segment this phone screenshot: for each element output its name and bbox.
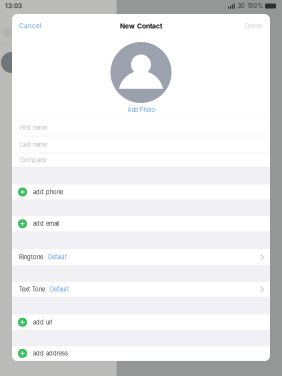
staticText: add phone	[33, 188, 63, 196]
staticText: Add Photo	[127, 106, 154, 113]
staticText: Done	[245, 22, 262, 30]
button[interactable]: Text Tone	[12, 282, 270, 297]
staticText: Cancel	[19, 22, 42, 30]
button[interactable]: Done	[240, 17, 270, 35]
button[interactable]: Ringtone	[12, 249, 270, 265]
staticText: 3G	[237, 3, 244, 9]
staticText: Text Tone	[19, 286, 45, 293]
button[interactable]: add url	[12, 314, 270, 330]
button[interactable]: add phone	[12, 185, 270, 199]
staticText: add email	[33, 220, 59, 227]
staticText: Last name	[20, 141, 47, 148]
staticText: Default	[50, 286, 69, 293]
button[interactable]: add address	[12, 346, 270, 360]
staticText: 13:03	[5, 2, 22, 10]
button[interactable]: Add Photo	[121, 103, 160, 117]
staticText: Company	[20, 156, 46, 164]
staticText: Default	[48, 254, 67, 261]
staticText: add address	[33, 350, 68, 357]
button[interactable]: Cancel	[12, 17, 47, 35]
staticText: add url	[33, 319, 52, 326]
staticText: 100%	[247, 3, 262, 9]
staticText: New Contact	[120, 22, 162, 30]
staticText: Ringtone	[19, 254, 43, 261]
button[interactable]: add email	[12, 216, 270, 231]
staticText: First name	[20, 124, 47, 131]
